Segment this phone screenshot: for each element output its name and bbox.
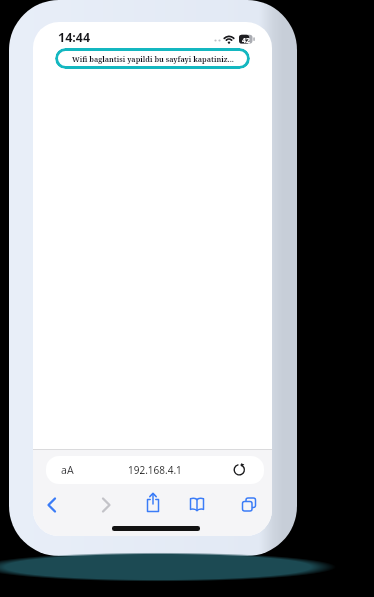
button[interactable]	[186, 494, 208, 516]
button[interactable]	[142, 491, 164, 517]
staticText: 42	[242, 36, 250, 45]
staticText: 192.168.4.1	[128, 463, 182, 477]
button[interactable]	[41, 494, 63, 516]
staticText: aA	[61, 463, 74, 477]
staticText: Wifi baglantisi yapildi bu sayfayi kapat…	[72, 54, 234, 64]
button[interactable]	[238, 494, 260, 516]
button[interactable]	[95, 494, 117, 516]
button[interactable]: Wifi baglantisi yapildi bu sayfayi kapat…	[55, 48, 250, 69]
staticText: 14:44	[58, 29, 91, 46]
button[interactable]: 192.168.4.1	[46, 456, 264, 484]
